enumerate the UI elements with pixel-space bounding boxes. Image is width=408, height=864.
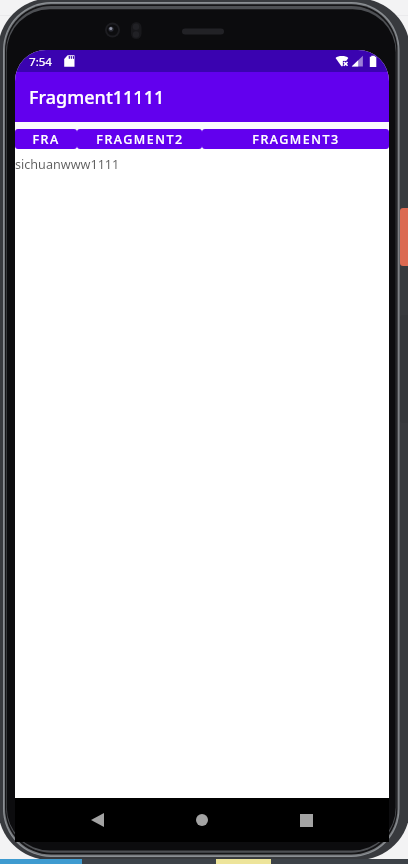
button[interactable]: FRAGMENT2: [77, 129, 202, 149]
staticText: Fragment11111: [29, 85, 165, 110]
button[interactable]: Home: [163, 798, 241, 842]
button[interactable]: Back: [58, 798, 136, 842]
staticText: sichuanwww1111: [15, 156, 120, 173]
staticText: FRAGMENT2: [96, 131, 184, 148]
staticText: FRAGMENT3: [252, 131, 340, 148]
button[interactable]: Recents: [267, 798, 345, 842]
button[interactable]: FRAGMENT3: [202, 129, 389, 149]
staticText: FRA: [32, 131, 60, 148]
button[interactable]: FRA: [15, 129, 77, 149]
staticText: 7:54: [29, 54, 53, 70]
